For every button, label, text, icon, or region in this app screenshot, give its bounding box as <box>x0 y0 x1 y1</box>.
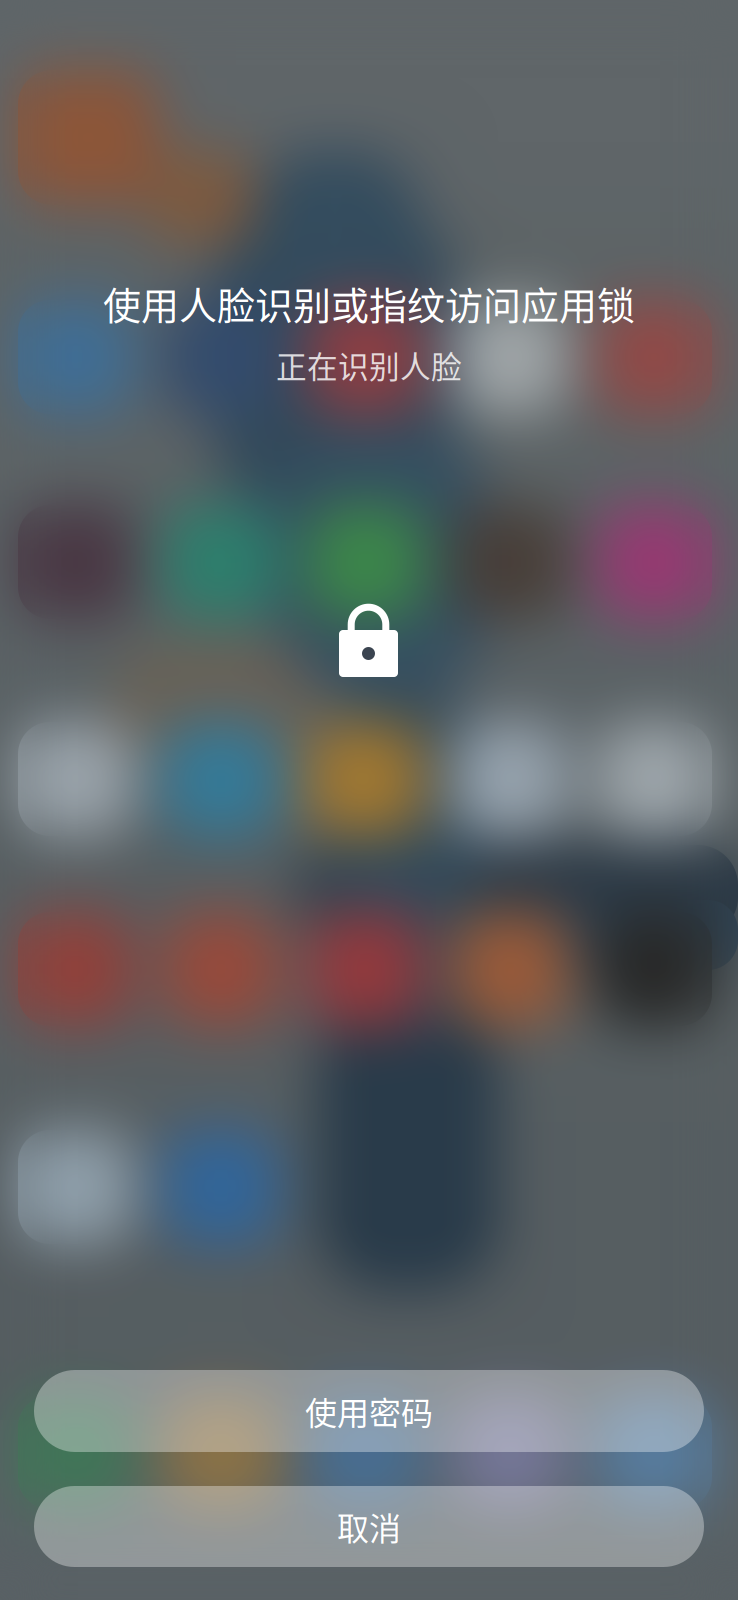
button[interactable]: 使用密码 <box>34 1370 704 1452</box>
staticText: 取消 <box>337 1503 401 1550</box>
staticText: 使用人脸识别或指纹访问应用锁 <box>103 275 635 330</box>
button[interactable]: 取消 <box>34 1486 704 1567</box>
staticText: 使用密码 <box>305 1388 433 1434</box>
staticText: 正在识别人脸 <box>276 343 462 387</box>
